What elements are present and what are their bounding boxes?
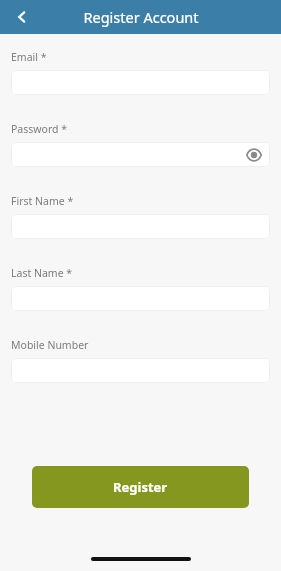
staticText: Email * xyxy=(11,50,47,64)
button[interactable]: Show password xyxy=(11,142,270,167)
button[interactable] xyxy=(11,214,270,239)
staticText: Password * xyxy=(11,122,68,136)
button[interactable]: Register xyxy=(32,466,249,508)
staticText: Register xyxy=(113,478,168,496)
staticText: Mobile Number xyxy=(11,338,89,352)
staticText: First Name * xyxy=(11,194,74,208)
button[interactable]: Show password xyxy=(245,146,263,164)
button[interactable]: Back xyxy=(0,0,44,34)
button[interactable] xyxy=(11,70,270,95)
staticText: Register Account xyxy=(83,7,199,27)
button[interactable] xyxy=(11,358,270,383)
staticText: Last Name * xyxy=(11,266,73,280)
button[interactable] xyxy=(11,286,270,311)
